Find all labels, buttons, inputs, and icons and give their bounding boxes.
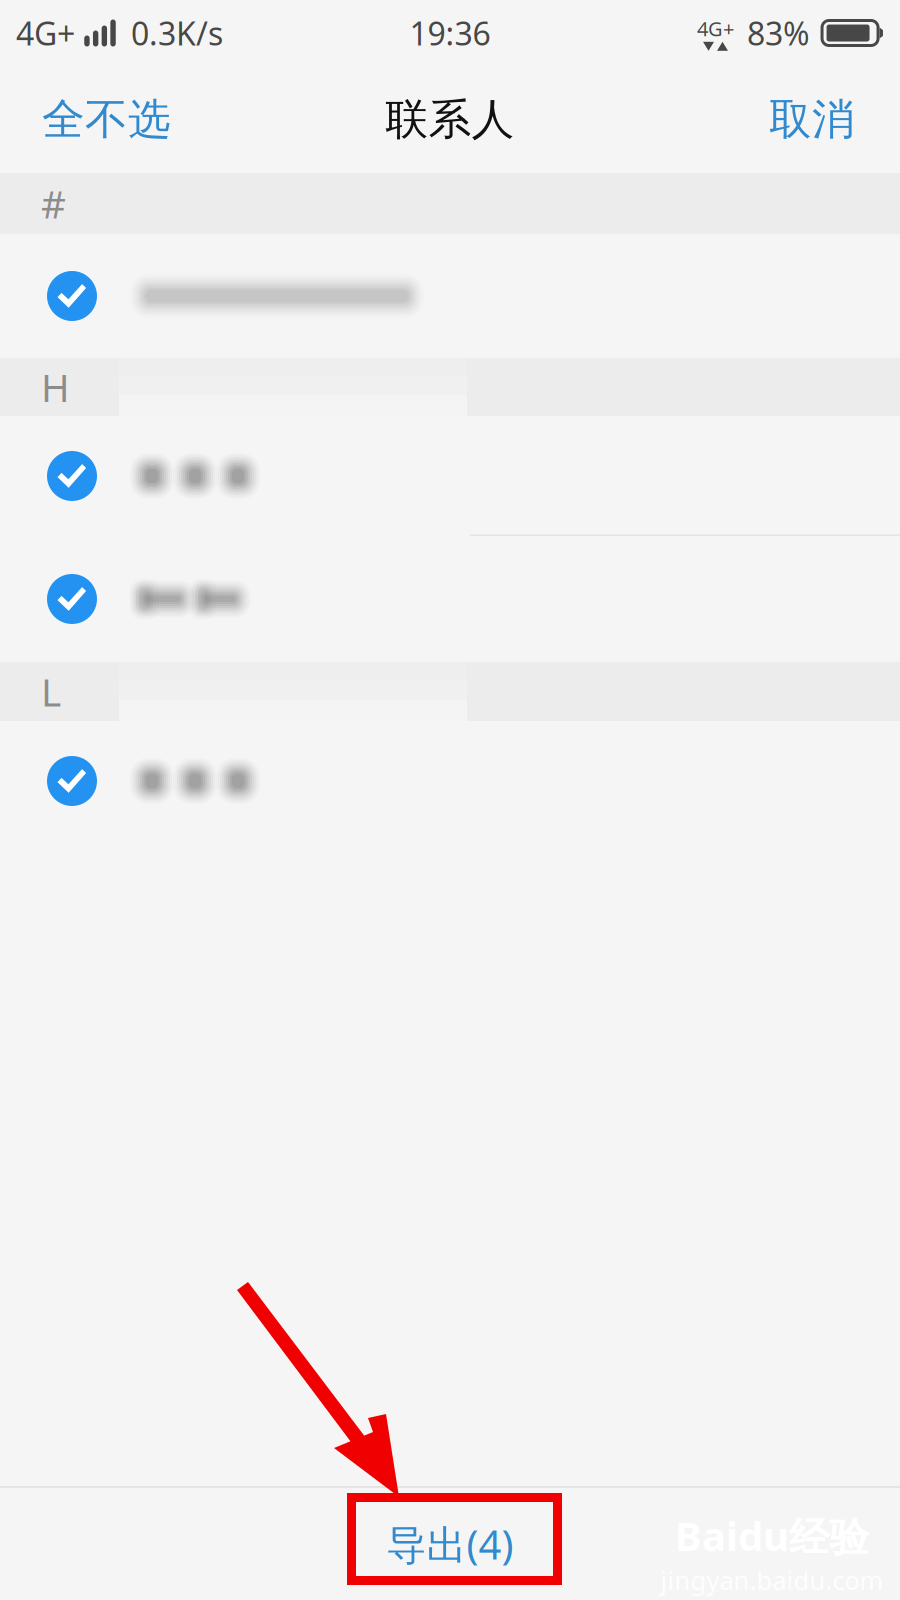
staticText: # [41,178,66,229]
staticText: H [41,361,70,413]
button[interactable]: 联系人 3, 已选中 [0,536,900,662]
staticText: 83% [747,12,810,54]
staticText: 19:36 [409,12,490,54]
button[interactable]: 联系人 1, 已选中 [0,234,900,358]
button[interactable]: 全不选 [0,71,197,168]
button[interactable]: 取消 [743,71,900,168]
button[interactable]: 联系人 2, 已选中 [0,416,900,536]
staticText: 联系人 [385,93,514,146]
staticText: 取消 [769,93,855,146]
staticText: 0.3K/s [131,12,223,54]
button[interactable]: 导出(4) [0,1488,900,1600]
staticText: 4G+ [697,15,734,42]
button[interactable]: 联系人 4, 已选中 [0,721,900,841]
staticText: 导出(4) [386,1517,513,1570]
staticText: Baidu经验 [675,1509,869,1562]
staticText: 4G+ [16,12,75,54]
staticText: 全不选 [42,93,171,146]
staticText: L [41,666,61,717]
